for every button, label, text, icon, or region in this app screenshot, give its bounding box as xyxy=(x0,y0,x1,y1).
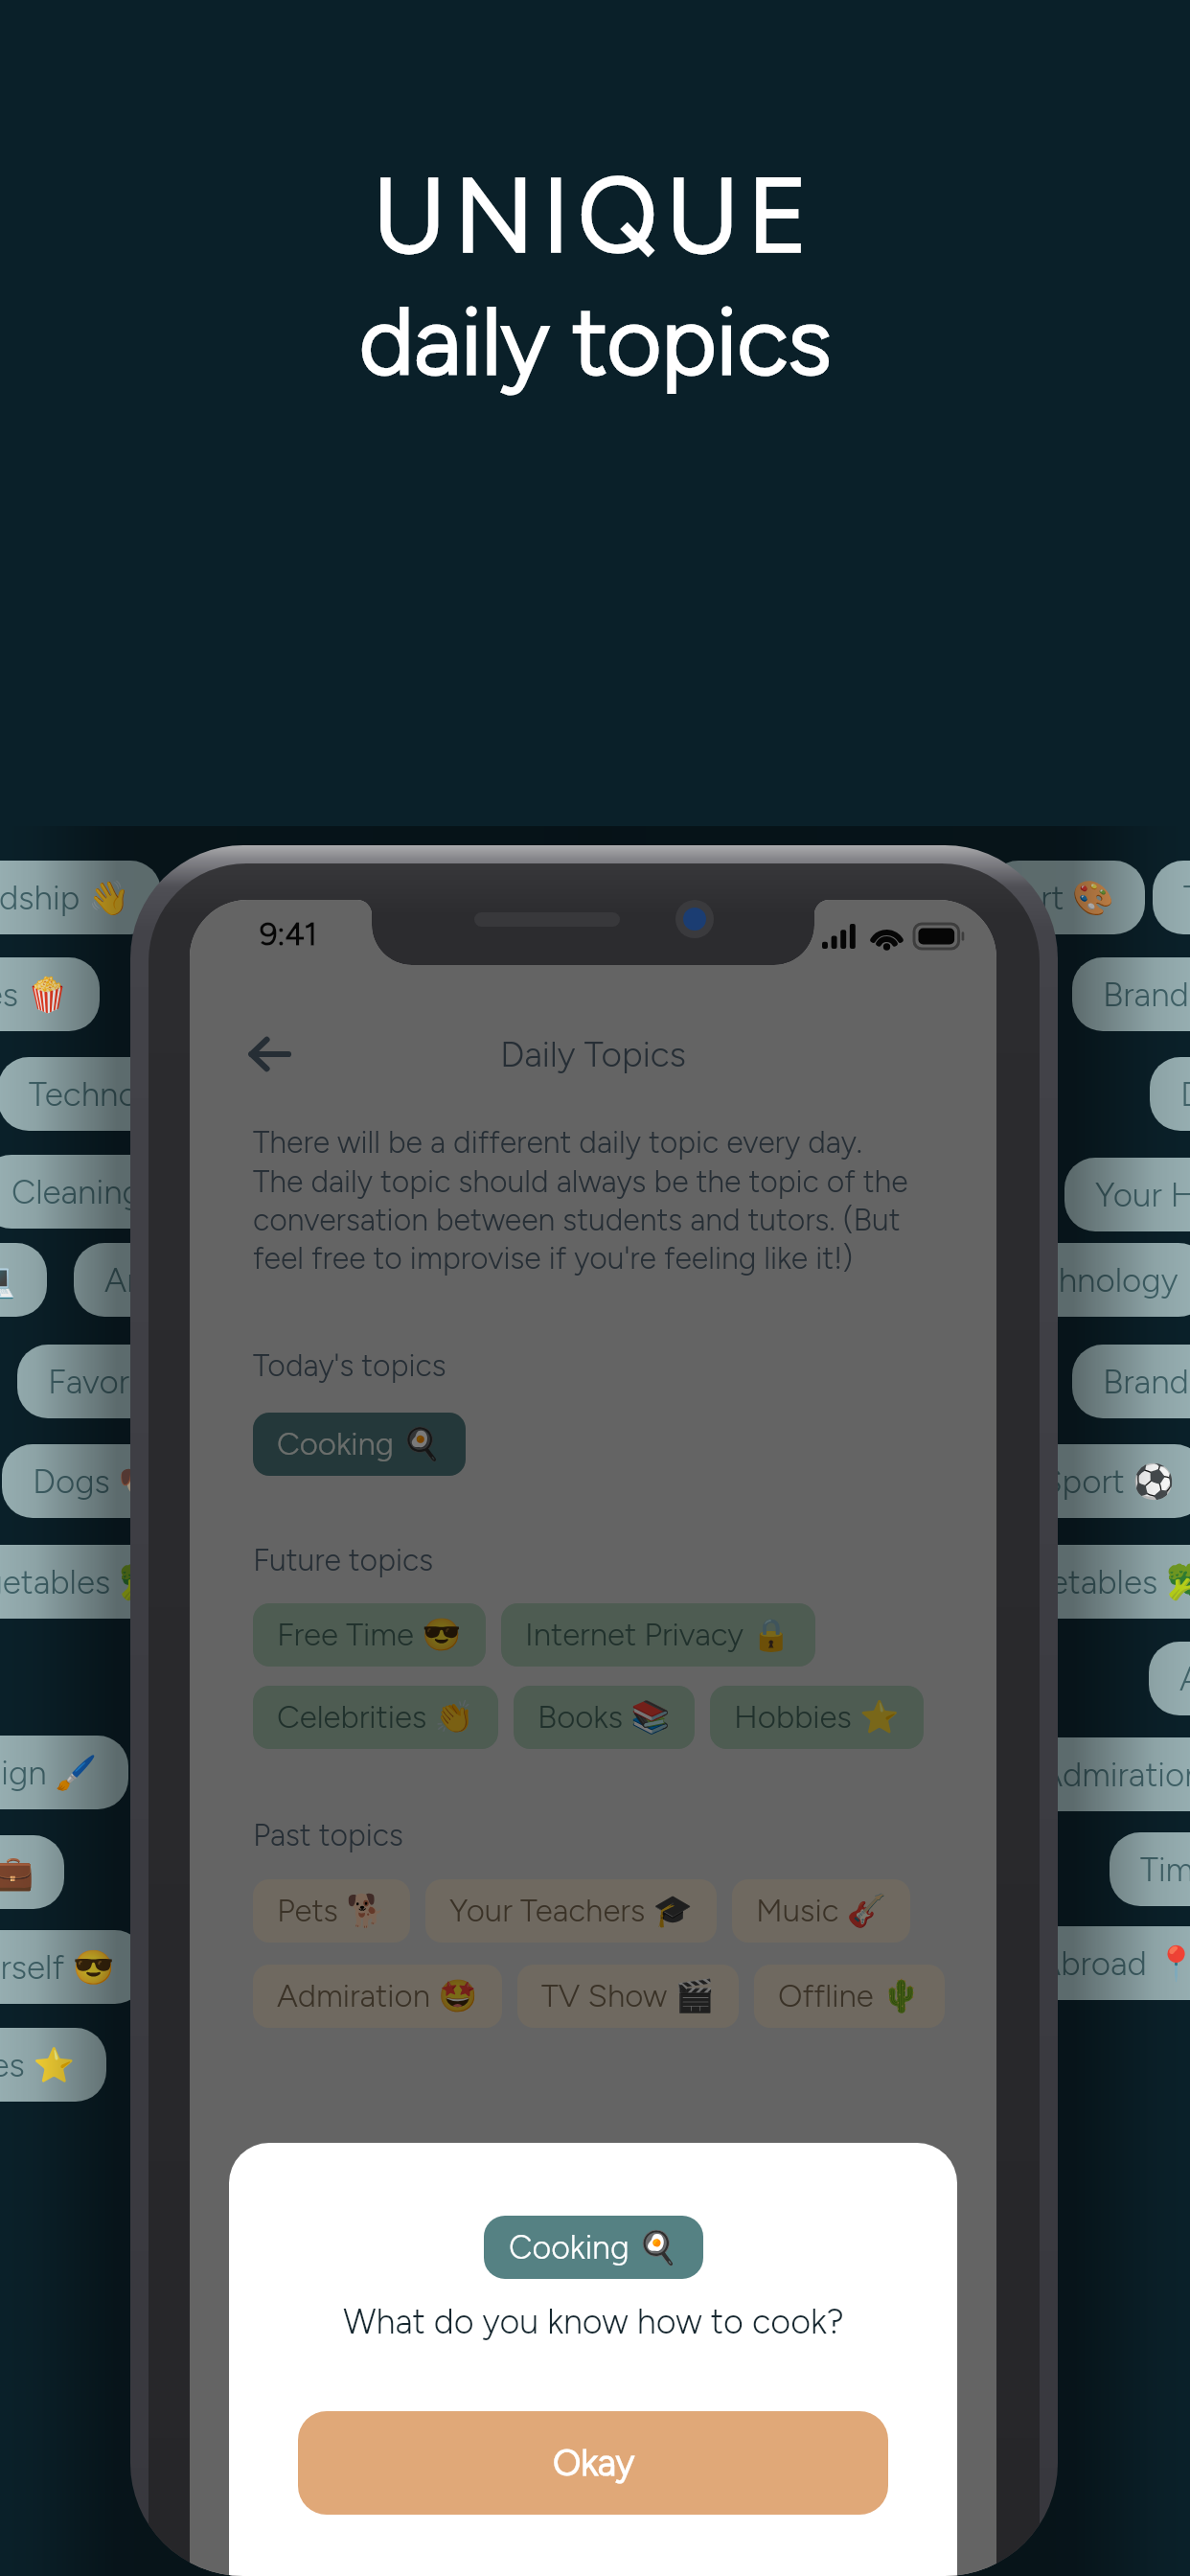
staticText: Past topics xyxy=(253,1817,403,1853)
staticText: Admiration 🤩 xyxy=(277,1977,478,2015)
staticText: Time ⏰ xyxy=(1183,878,1190,918)
button[interactable]: Internet Privacy 🔒 xyxy=(501,1603,815,1667)
staticText: TV Show 🎬 xyxy=(541,1977,715,2015)
button[interactable]: Pets 🐕 xyxy=(253,1879,410,1943)
button[interactable]: Back xyxy=(232,1019,307,1090)
staticText: There will be a different daily topic ev… xyxy=(253,1124,908,1276)
staticText: Movies 🍿 xyxy=(0,975,69,1015)
button[interactable]: Free Time 😎 xyxy=(253,1603,486,1667)
staticText: Design xyxy=(1180,1074,1190,1115)
staticText: Favorites xyxy=(48,1362,183,1402)
button[interactable]: Okay xyxy=(298,2411,888,2515)
staticText: Music 🎸 xyxy=(756,1892,886,1930)
staticText: Daily Topics xyxy=(500,1033,686,1075)
staticText: Work 💼 xyxy=(0,1852,34,1893)
button[interactable]: Books 📚 xyxy=(514,1686,695,1749)
staticText: Admiration xyxy=(1041,1755,1190,1795)
staticText: Vegetables 🥦 xyxy=(0,1562,161,1602)
staticText: UNIQUE xyxy=(373,153,817,276)
staticText: Internet Privacy 🔒 xyxy=(525,1616,791,1654)
staticText: Cooking 🍳 xyxy=(277,1425,442,1463)
staticText: Technology xyxy=(29,1074,201,1115)
staticText: Hobbies ⭐ xyxy=(734,1698,900,1736)
staticText: Dogs 🐶 xyxy=(33,1461,161,1502)
staticText: Yourself 😎 xyxy=(0,1947,115,1988)
staticText: Celebrities 👏 xyxy=(277,1698,474,1736)
staticText: Laptop 💻 xyxy=(0,1260,16,1300)
staticText: Your Hobby xyxy=(1095,1175,1190,1215)
staticText: Friendship 👋 xyxy=(0,878,130,918)
button[interactable]: TV Show 🎬 xyxy=(517,1965,739,2028)
button[interactable]: Offline 🌵 xyxy=(754,1965,945,2028)
staticText: Today's topics xyxy=(253,1347,446,1384)
staticText: Sport ⚽ xyxy=(1041,1461,1175,1502)
staticText: Cleaning xyxy=(11,1172,142,1212)
staticText: Books 📚 xyxy=(538,1698,671,1736)
button[interactable]: Celebrities 👏 xyxy=(253,1686,498,1749)
staticText: Pets 🐕 xyxy=(277,1892,386,1930)
staticText: Your Teachers 🎓 xyxy=(449,1892,693,1930)
button[interactable]: Hobbies ⭐ xyxy=(710,1686,924,1749)
staticText: Time ⏰ xyxy=(1140,1850,1190,1890)
staticText: daily topics xyxy=(359,285,832,398)
staticText: Vegetables 🥦 xyxy=(991,1562,1190,1602)
staticText: Art 🎨 xyxy=(1179,1659,1190,1699)
staticText: Favorites ⭐ xyxy=(0,2045,76,2085)
staticText: Technology xyxy=(1006,1260,1179,1300)
staticText: Animals xyxy=(104,1260,220,1300)
staticText: Okay xyxy=(553,2441,634,2485)
staticText: Cooking 🍳 xyxy=(509,2228,678,2267)
staticText: Free Time 😎 xyxy=(277,1616,462,1654)
staticText: Art 🎨 xyxy=(1018,878,1114,918)
staticText: What do you know how to cook? xyxy=(343,2301,844,2342)
button[interactable]: Cooking 🍳 xyxy=(253,1413,466,1476)
staticText: Brands xyxy=(1103,1362,1190,1402)
staticText: Future topics xyxy=(253,1542,434,1578)
button[interactable]: Cooking 🍳 xyxy=(484,2216,703,2279)
staticText: Abroad 📍 xyxy=(1039,1943,1190,1984)
button[interactable]: Admiration 🤩 xyxy=(253,1965,502,2028)
staticText: Design 🖌️ xyxy=(0,1753,98,1793)
staticText: 9:41 xyxy=(260,915,318,954)
staticText: Offline 🌵 xyxy=(778,1977,921,2015)
button[interactable]: Music 🎸 xyxy=(732,1879,910,1943)
button[interactable]: Your Teachers 🎓 xyxy=(425,1879,717,1943)
staticText: Brands xyxy=(1103,975,1190,1015)
